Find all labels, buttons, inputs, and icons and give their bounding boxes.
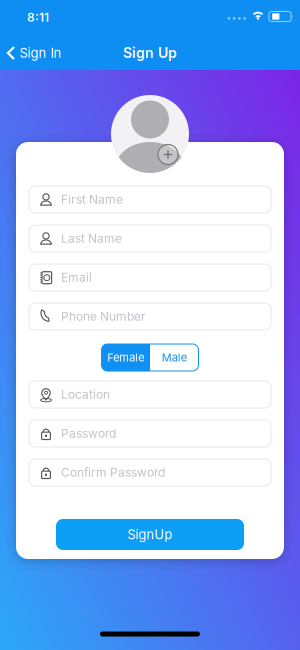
staticText: Password [61,426,116,441]
button[interactable]: Female [101,344,150,371]
staticText: 8:11 [27,10,49,25]
button[interactable]: Password [29,420,271,447]
button[interactable]: Location [29,381,271,408]
staticText: Male [162,351,187,364]
button[interactable]: Phone Number [29,303,271,330]
staticText: Sign Up [123,45,177,61]
staticText: First Name [61,192,123,207]
staticText: Email [61,270,92,285]
staticText: Sign In [19,45,61,61]
button[interactable]: First Name [29,186,271,213]
staticText: Phone Number [61,309,146,324]
button[interactable]: Sign In [6,45,61,61]
button[interactable]: Confirm Password [29,459,271,486]
button[interactable]: Last Name [29,225,271,252]
staticText: Location [61,387,110,402]
staticText: Last Name [61,231,122,246]
staticText: SignUp [127,527,172,542]
staticText: Female [107,351,144,364]
staticText: Confirm Password [61,465,165,480]
button[interactable]: Male [150,344,198,371]
button[interactable]: Email [29,264,271,291]
button[interactable]: SignUp [56,519,244,550]
button[interactable]: Add photo [158,144,178,164]
